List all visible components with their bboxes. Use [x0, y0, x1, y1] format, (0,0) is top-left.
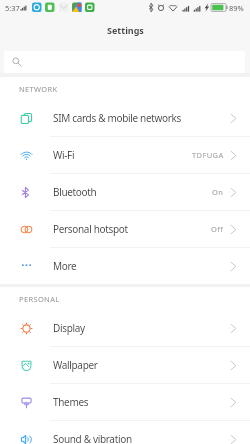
staticText: More — [53, 259, 77, 273]
staticText: Themes — [53, 395, 89, 409]
button[interactable]: Wallpaper — [0, 347, 250, 383]
staticText: Sound & vibration — [53, 432, 132, 444]
staticText: 89% — [229, 3, 244, 13]
button[interactable]: Sound & vibration — [0, 421, 250, 444]
staticText: Wallpaper — [53, 358, 98, 372]
button[interactable]: More — [0, 248, 250, 284]
staticText: TDFUGA — [192, 150, 224, 160]
button[interactable]: Display — [0, 310, 250, 346]
button[interactable]: SIM cards & mobile networks — [0, 100, 250, 136]
staticText: PERSONAL — [19, 294, 60, 304]
button[interactable]: Search — [4, 51, 245, 73]
staticText: Settings — [107, 24, 144, 36]
staticText: SIM cards & mobile networks — [53, 111, 181, 125]
button[interactable]: Bluetooth — [0, 174, 250, 210]
button[interactable]: Wi-Fi — [0, 137, 250, 173]
staticText: Wi-Fi — [53, 148, 75, 162]
staticText: Personal hotspot — [53, 222, 128, 236]
staticText: Display — [53, 321, 85, 335]
staticText: Bluetooth — [53, 185, 97, 199]
staticText: NETWORK — [19, 84, 58, 94]
staticText: 5:37 — [5, 3, 20, 13]
button[interactable]: Personal hotspot — [0, 211, 250, 247]
staticText: Off — [211, 224, 224, 234]
button[interactable]: Themes — [0, 384, 250, 420]
staticText: On — [212, 187, 224, 197]
